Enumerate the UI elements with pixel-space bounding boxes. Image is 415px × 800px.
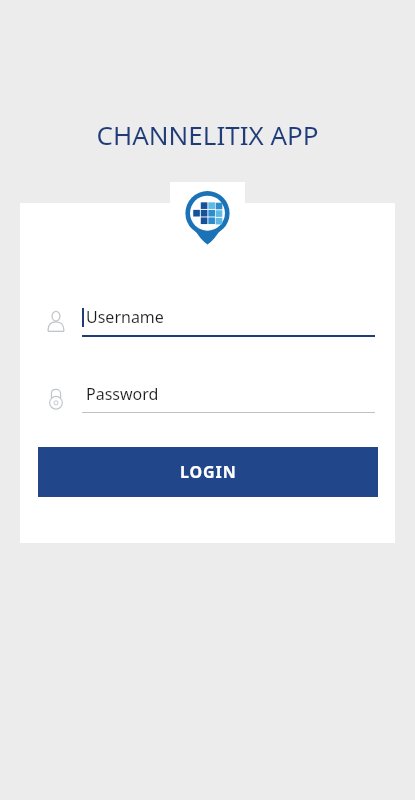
other: Channelitix logo	[184, 190, 231, 245]
staticText: Username	[86, 306, 164, 328]
other: Username	[43, 308, 69, 334]
staticText: Password	[86, 383, 159, 405]
button[interactable]: Password	[20, 376, 395, 420]
button[interactable]: LOGIN	[38, 447, 378, 497]
staticText: LOGIN	[180, 461, 237, 483]
other: Password	[43, 385, 69, 411]
button[interactable]: Username	[20, 299, 395, 343]
staticText: CHANNELITIX APP	[0, 117, 415, 152]
